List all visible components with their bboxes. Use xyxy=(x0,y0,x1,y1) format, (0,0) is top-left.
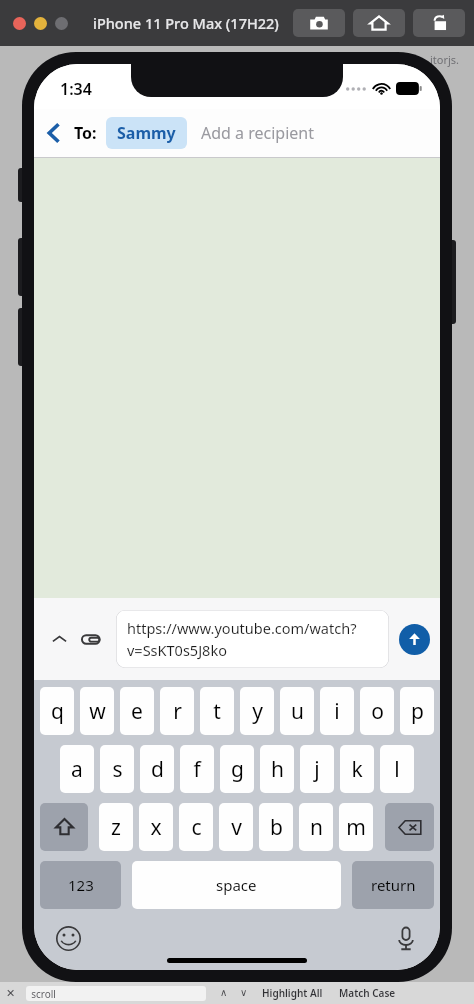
button[interactable]: f xyxy=(180,745,214,793)
button[interactable]: Emoji xyxy=(50,920,86,956)
staticText: ∨ xyxy=(240,987,248,999)
button[interactable]: b xyxy=(259,803,293,851)
button[interactable]: m xyxy=(339,803,373,851)
button[interactable]: l xyxy=(380,745,414,793)
button[interactable]: Home xyxy=(353,9,405,37)
button[interactable]: Dictate xyxy=(388,920,424,956)
staticText: w xyxy=(89,697,106,726)
staticText: 1:34 xyxy=(60,78,92,100)
button[interactable]: j xyxy=(300,745,334,793)
button[interactable]: Sammy xyxy=(106,117,187,149)
button[interactable]: q xyxy=(40,687,74,735)
staticText: l xyxy=(394,755,400,784)
staticText: e xyxy=(430,670,437,685)
button[interactable]: Minimise xyxy=(34,17,47,30)
button[interactable]: Expand xyxy=(44,624,74,654)
button[interactable]: Attach xyxy=(76,624,106,654)
button[interactable]: t xyxy=(200,687,234,735)
staticText: f xyxy=(193,755,201,784)
staticText: ✕ xyxy=(6,987,16,1000)
button[interactable]: Screenshot xyxy=(293,9,345,37)
staticText: x xyxy=(150,813,162,842)
staticText: r xyxy=(173,697,182,726)
button[interactable]: Close xyxy=(13,17,26,30)
staticText: ∧ xyxy=(220,987,228,999)
staticText: i xyxy=(334,697,340,726)
staticText: n xyxy=(310,813,323,842)
staticText: Match Case xyxy=(339,986,396,1000)
staticText: Highlight All xyxy=(262,986,323,1000)
button[interactable]: g xyxy=(220,745,254,793)
button[interactable]: c xyxy=(179,803,213,851)
staticText: p xyxy=(411,697,424,726)
staticText: 123 xyxy=(68,875,94,895)
staticText: m xyxy=(346,813,366,842)
button[interactable]: 123 xyxy=(40,861,121,909)
button[interactable]: h xyxy=(260,745,294,793)
staticText: Sammy xyxy=(117,122,176,144)
staticText: j xyxy=(314,755,320,784)
staticText: c xyxy=(191,813,202,842)
button[interactable]: s xyxy=(100,745,134,793)
staticText: Add a recipient xyxy=(201,122,314,144)
button[interactable]: v xyxy=(219,803,253,851)
button[interactable]: Shift xyxy=(40,803,88,851)
staticText: h xyxy=(271,755,284,784)
button[interactable]: z xyxy=(99,803,133,851)
button[interactable]: Back xyxy=(34,109,74,157)
button[interactable]: n xyxy=(299,803,333,851)
button[interactable]: r xyxy=(160,687,194,735)
staticText: iPhone 11 Pro Max (17H22) xyxy=(93,13,279,33)
staticText: t xyxy=(213,697,221,726)
staticText: d xyxy=(151,755,164,784)
staticText: a xyxy=(71,755,83,784)
button[interactable]: Add a recipient xyxy=(201,109,440,157)
staticText: itorjs. xyxy=(430,52,460,67)
staticText: g xyxy=(231,755,244,784)
button[interactable]: space xyxy=(132,861,341,909)
button[interactable]: i xyxy=(320,687,354,735)
staticText: s xyxy=(112,755,123,784)
staticText: z xyxy=(111,813,121,842)
staticText: https://www.youtube.com/watch? xyxy=(127,618,357,638)
button[interactable]: a xyxy=(60,745,94,793)
staticText: return xyxy=(371,875,416,895)
button[interactable]: Send xyxy=(399,624,430,655)
staticText: q xyxy=(51,697,64,726)
button[interactable]: u xyxy=(280,687,314,735)
button[interactable]: e xyxy=(120,687,154,735)
staticText: v xyxy=(231,813,242,842)
button[interactable]: d xyxy=(140,745,174,793)
staticText: k xyxy=(351,755,363,784)
staticText: v=SsKT0s5J8ko xyxy=(127,640,227,660)
staticText: y xyxy=(252,697,263,726)
button[interactable]: p xyxy=(400,687,434,735)
button[interactable]: return xyxy=(352,861,434,909)
staticText: space xyxy=(216,875,257,895)
button[interactable]: k xyxy=(340,745,374,793)
staticText: b xyxy=(270,813,283,842)
staticText: e xyxy=(131,697,143,726)
button[interactable]: y xyxy=(240,687,274,735)
staticText: scroll xyxy=(26,987,56,1001)
button[interactable]: Backspace xyxy=(385,803,434,851)
button[interactable]: Zoom xyxy=(55,17,68,30)
button[interactable]: w xyxy=(80,687,114,735)
button[interactable]: x xyxy=(139,803,173,851)
button[interactable]: o xyxy=(360,687,394,735)
staticText: u xyxy=(291,697,304,726)
button[interactable]: https://www.youtube.com/watch? xyxy=(116,610,389,668)
staticText: o xyxy=(371,697,384,726)
staticText: To: xyxy=(74,122,97,144)
button[interactable]: Share xyxy=(413,9,465,37)
